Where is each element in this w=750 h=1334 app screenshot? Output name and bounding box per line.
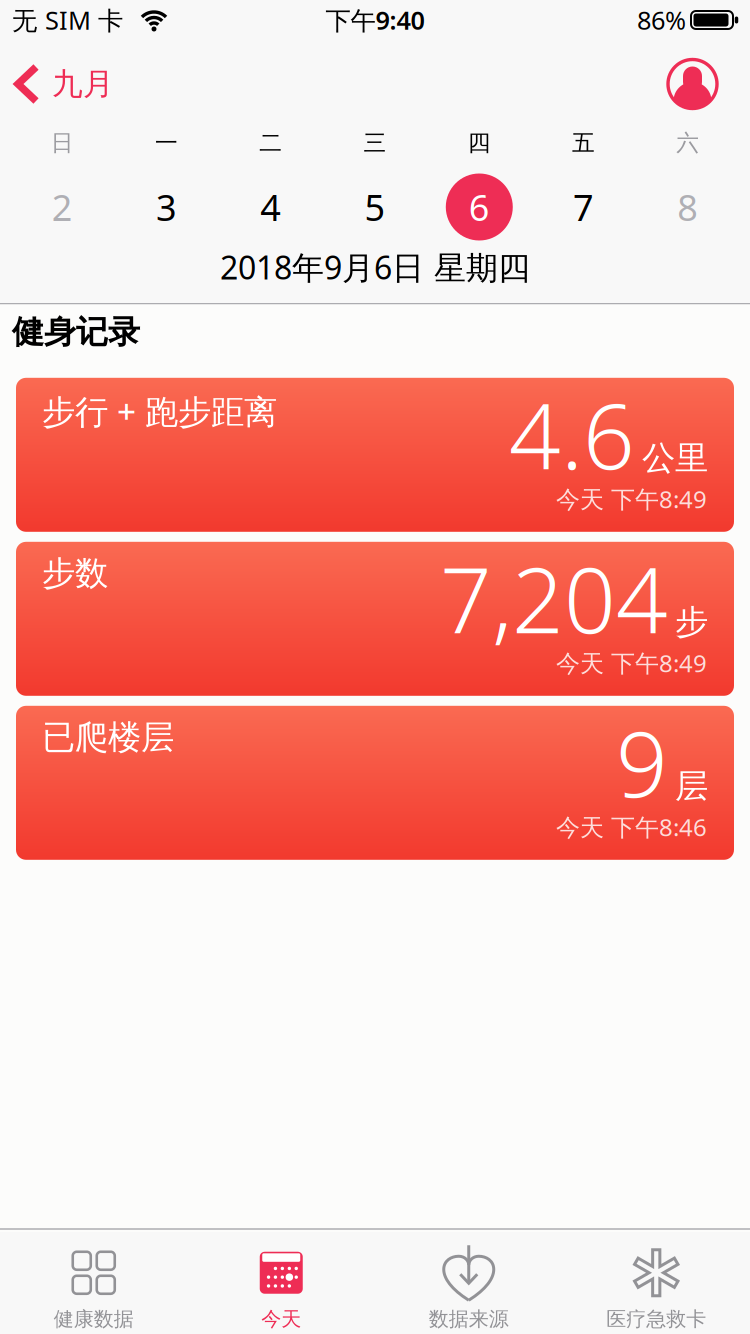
staticText: 2 bbox=[52, 183, 73, 231]
staticText: 7 bbox=[573, 183, 594, 231]
button[interactable] bbox=[668, 59, 750, 108]
staticText: 健身记录 bbox=[12, 312, 140, 352]
button[interactable]: 2 bbox=[10, 183, 114, 231]
staticText: 86% bbox=[637, 3, 686, 37]
staticText: 今天 bbox=[261, 1307, 301, 1331]
staticText: 2018年9月6日 星期四 bbox=[220, 246, 530, 288]
staticText: 步 bbox=[675, 602, 708, 642]
button[interactable]: 健康数据 bbox=[0, 1232, 187, 1330]
staticText: 今天 下午8:49 bbox=[556, 647, 707, 679]
button[interactable]: 步数 bbox=[16, 542, 734, 696]
staticText: 一 bbox=[155, 129, 178, 157]
button[interactable]: 医疗急救卡 bbox=[562, 1232, 750, 1330]
button[interactable]: 九月 bbox=[0, 62, 114, 106]
staticText: 步行 + 跑步距离 bbox=[42, 389, 277, 433]
staticText: 步数 bbox=[42, 553, 108, 594]
staticText: 二 bbox=[259, 129, 282, 157]
button[interactable]: 步行 + 跑步距离 bbox=[16, 378, 734, 532]
button[interactable]: 8 bbox=[636, 183, 740, 231]
button[interactable]: 7 bbox=[531, 183, 636, 231]
button[interactable]: 3 bbox=[114, 183, 219, 231]
staticText: 日 bbox=[51, 129, 74, 157]
staticText: 六 bbox=[676, 129, 699, 157]
button[interactable]: 4 bbox=[219, 183, 323, 231]
staticText: 4.6 bbox=[509, 374, 635, 494]
staticText: 9 bbox=[616, 702, 668, 822]
staticText: 8 bbox=[677, 183, 698, 231]
staticText: 数据来源 bbox=[429, 1307, 509, 1331]
staticText: 下午9:40 bbox=[325, 3, 424, 37]
staticText: 今天 下午8:49 bbox=[556, 483, 707, 515]
staticText: 6 bbox=[469, 183, 490, 231]
staticText: 医疗急救卡 bbox=[606, 1307, 706, 1331]
staticText: 四 bbox=[468, 129, 491, 157]
button[interactable]: 已爬楼层 bbox=[16, 706, 734, 860]
staticText: 层 bbox=[675, 766, 708, 806]
staticText: 无 SIM 卡 bbox=[12, 3, 123, 37]
staticText: 3 bbox=[156, 183, 177, 231]
staticText: 公里 bbox=[642, 438, 708, 478]
staticText: 4 bbox=[260, 183, 281, 231]
staticText: 已爬楼层 bbox=[42, 717, 174, 758]
button[interactable]: 今天 bbox=[187, 1232, 375, 1330]
staticText: 7,204 bbox=[440, 538, 668, 658]
staticText: 健康数据 bbox=[54, 1307, 134, 1331]
staticText: 今天 下午8:46 bbox=[556, 811, 707, 843]
staticText: 五 bbox=[572, 129, 595, 157]
staticText: 5 bbox=[364, 183, 385, 231]
button[interactable]: 数据来源 bbox=[375, 1232, 562, 1330]
staticText: 三 bbox=[363, 129, 386, 157]
button[interactable]: 5 bbox=[323, 183, 427, 231]
button[interactable]: 6 bbox=[427, 173, 531, 240]
staticText: 九月 bbox=[52, 65, 114, 103]
